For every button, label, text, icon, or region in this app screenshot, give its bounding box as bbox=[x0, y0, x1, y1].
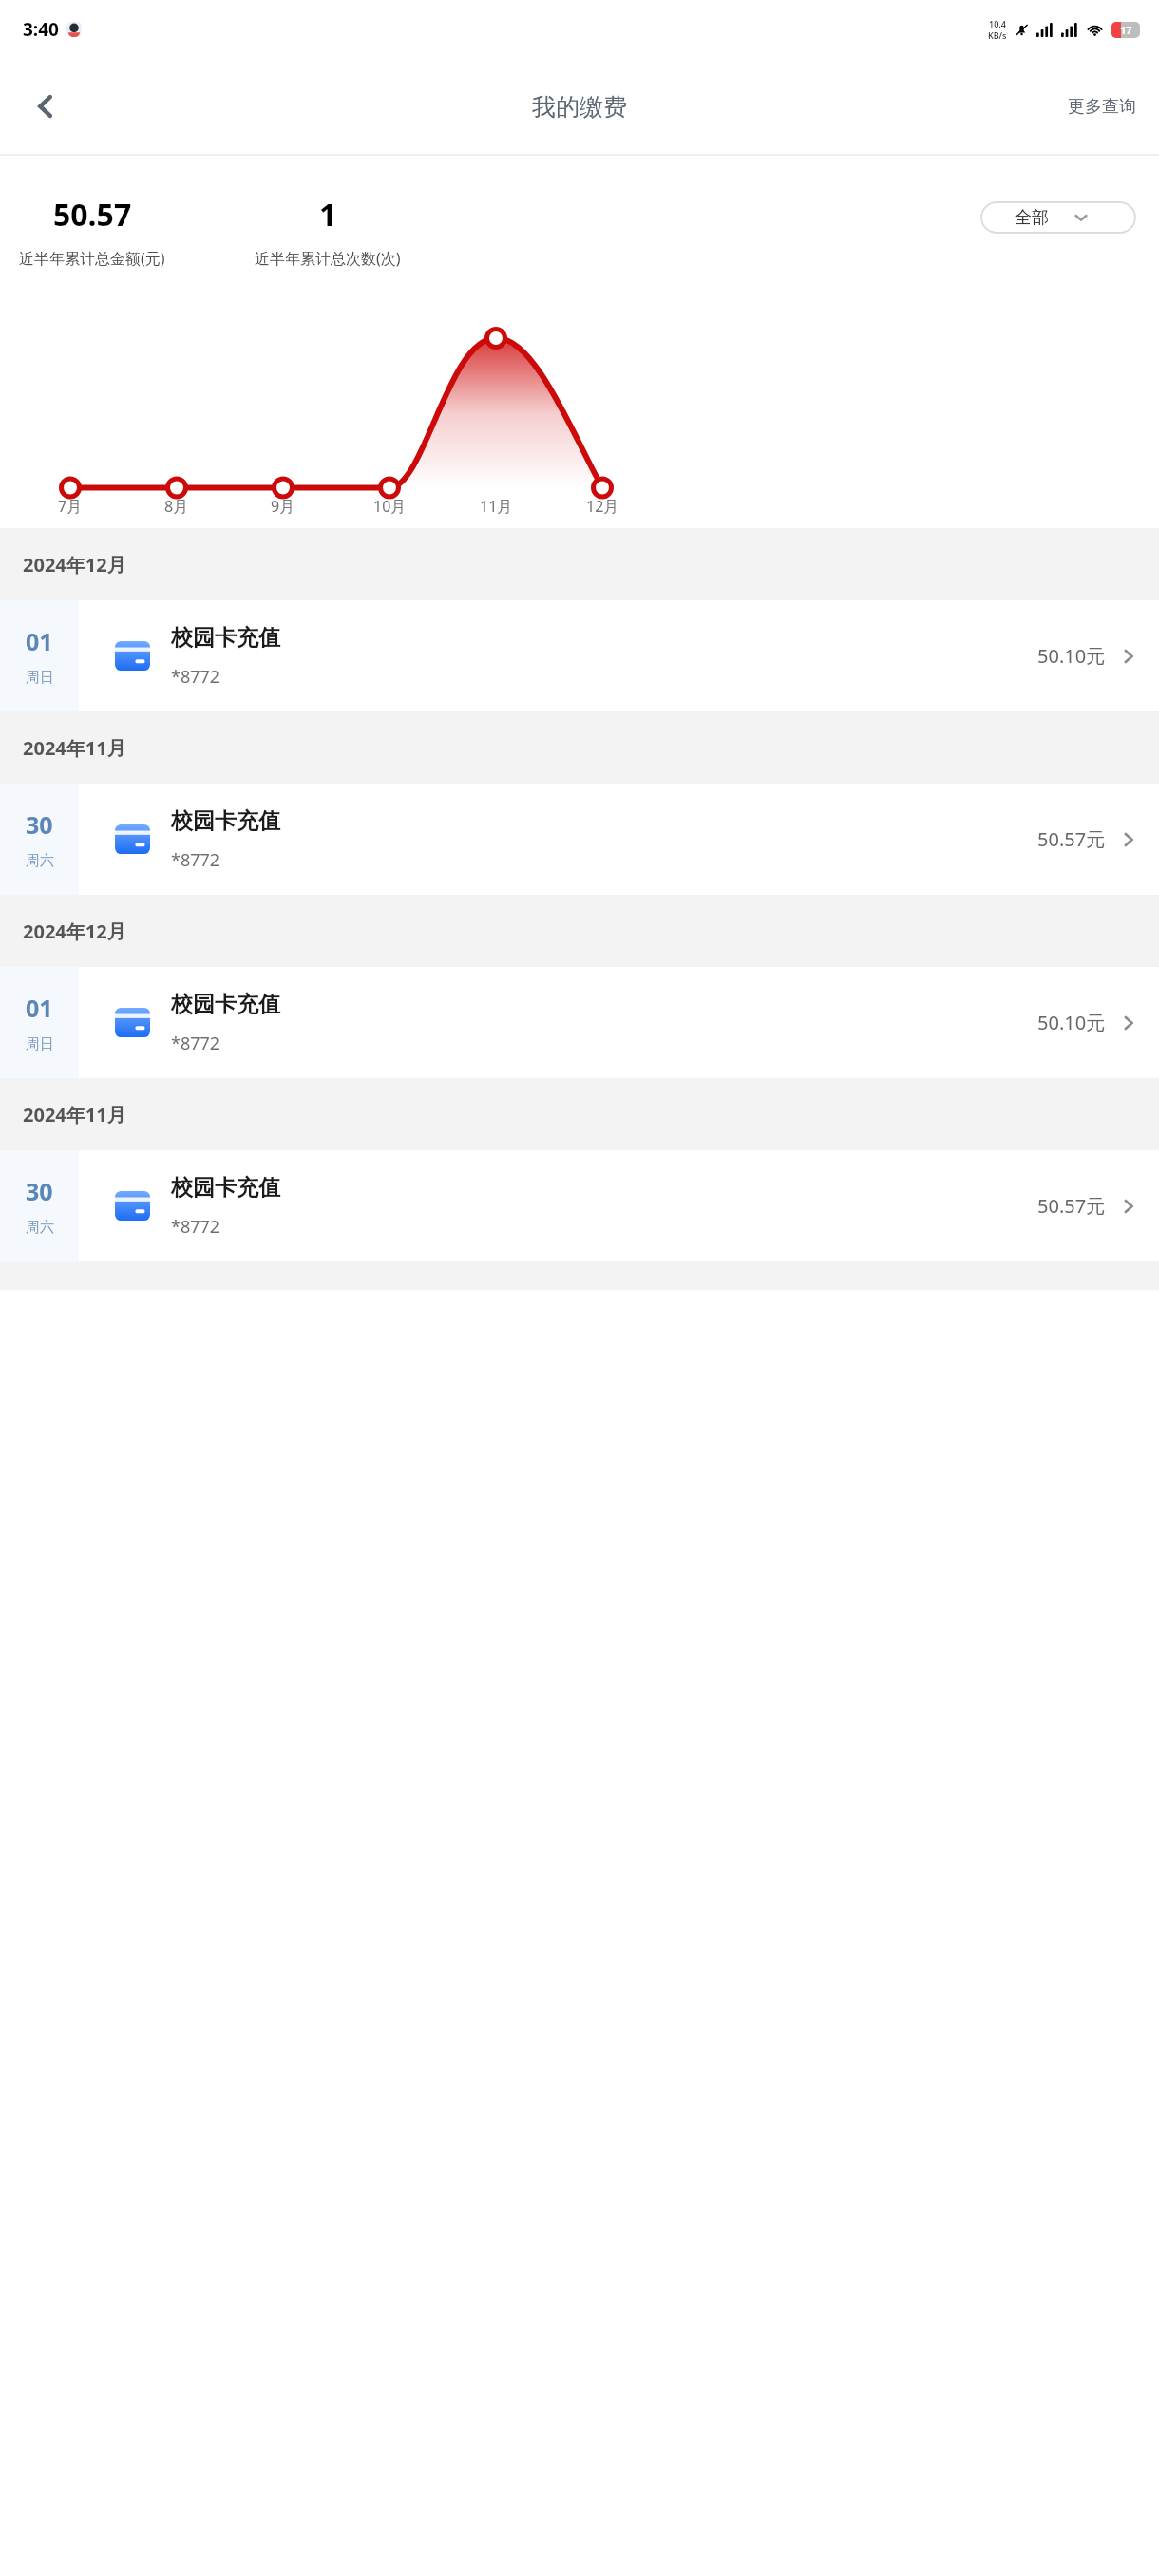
button[interactable]: Back bbox=[0, 59, 91, 154]
button[interactable]: 30 bbox=[0, 784, 1159, 895]
staticText: 50.57元 bbox=[1037, 1193, 1106, 1219]
button[interactable]: 全部 bbox=[980, 201, 1136, 234]
staticText: 周六 bbox=[26, 1219, 54, 1237]
staticText: 10.4 bbox=[989, 18, 1006, 29]
staticText: 01 bbox=[26, 992, 53, 1024]
staticText: *8772 bbox=[171, 848, 220, 872]
staticText: 17 bbox=[1120, 23, 1132, 37]
staticText: 校园卡充值 bbox=[171, 807, 280, 835]
staticText: 1 bbox=[319, 194, 337, 236]
staticText: 01 bbox=[26, 625, 53, 657]
staticText: 8月 bbox=[164, 496, 189, 517]
button[interactable]: 01 bbox=[0, 967, 1159, 1078]
staticText: 周六 bbox=[26, 852, 54, 870]
staticText: 2024年11月 bbox=[23, 735, 126, 761]
staticText: 更多查询 bbox=[1068, 96, 1136, 118]
staticText: 50.57 bbox=[53, 194, 132, 236]
staticText: 2024年11月 bbox=[23, 1102, 126, 1127]
staticText: 10月 bbox=[373, 496, 407, 517]
staticText: 全部 bbox=[1015, 207, 1049, 229]
staticText: *8772 bbox=[171, 1032, 220, 1055]
staticText: 周日 bbox=[26, 669, 54, 687]
button[interactable]: 更多查询 bbox=[1060, 85, 1144, 129]
staticText: KB/s bbox=[988, 29, 1007, 41]
staticText: 50.10元 bbox=[1037, 643, 1106, 669]
staticText: 50.57元 bbox=[1037, 826, 1106, 852]
staticText: 我的缴费 bbox=[532, 92, 627, 122]
button[interactable]: 30 bbox=[0, 1150, 1159, 1261]
staticText: 校园卡充值 bbox=[171, 624, 280, 652]
staticText: 2024年12月 bbox=[23, 919, 126, 944]
staticText: 3:40 bbox=[23, 17, 59, 42]
staticText: 校园卡充值 bbox=[171, 991, 280, 1018]
staticText: 30 bbox=[26, 1175, 53, 1207]
staticText: 校园卡充值 bbox=[171, 1174, 280, 1202]
staticText: 12月 bbox=[586, 496, 619, 517]
staticText: 2024年12月 bbox=[23, 552, 126, 578]
staticText: 近半年累计总金额(元) bbox=[19, 248, 165, 269]
staticText: 周日 bbox=[26, 1035, 54, 1053]
staticText: 7月 bbox=[58, 496, 83, 517]
staticText: 9月 bbox=[271, 496, 295, 517]
staticText: 30 bbox=[26, 808, 53, 841]
staticText: *8772 bbox=[171, 1215, 220, 1239]
staticText: 近半年累计总次数(次) bbox=[255, 248, 401, 269]
staticText: *8772 bbox=[171, 665, 220, 689]
button[interactable]: 01 bbox=[0, 600, 1159, 711]
staticText: 50.10元 bbox=[1037, 1010, 1106, 1035]
staticText: 11月 bbox=[480, 496, 513, 517]
